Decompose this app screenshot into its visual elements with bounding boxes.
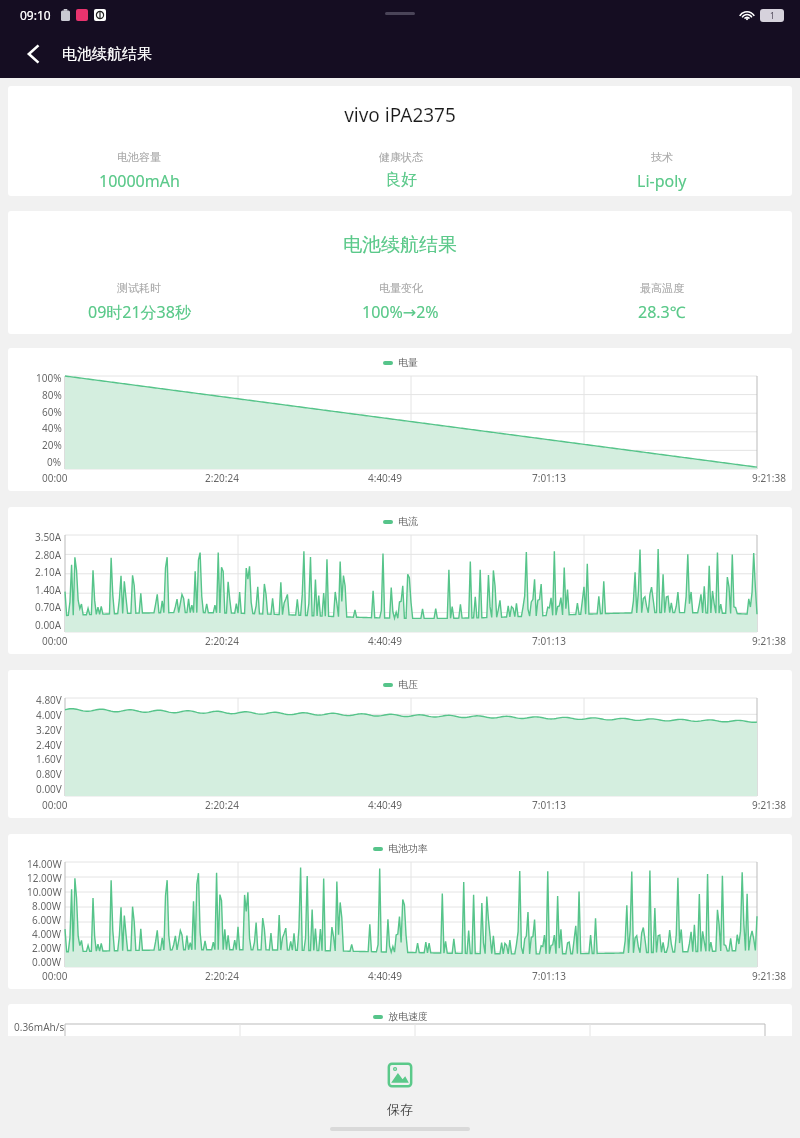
staticText: 电池续航结果 (62, 45, 152, 64)
staticText: 2.00W (32, 941, 62, 955)
staticText: 0% (47, 455, 62, 469)
staticText: 7:01:13 (532, 969, 566, 983)
staticText: 28.3℃ (638, 301, 686, 323)
staticText: 电量变化 (379, 281, 423, 295)
staticText: 3.20V (36, 723, 62, 737)
staticText: 80% (42, 388, 62, 402)
staticText: vivo iPA2375 (8, 102, 792, 128)
staticText: 9:21:38 (752, 798, 786, 812)
staticText: 4:40:49 (368, 471, 402, 485)
staticText: 4.00V (36, 708, 62, 722)
staticText: 7:01:13 (532, 798, 566, 812)
staticText: 12.00W (27, 871, 62, 885)
staticText: 7:01:13 (532, 471, 566, 485)
staticText: 4.00W (32, 927, 62, 941)
staticText: 9:21:38 (752, 471, 786, 485)
staticText: 测试耗时 (117, 281, 161, 295)
staticText: 0.80V (36, 767, 62, 781)
staticText: 电池续航结果 (8, 233, 792, 257)
staticText: 4:40:49 (368, 969, 402, 983)
staticText: 1.60V (36, 752, 62, 766)
staticText: 技术 (651, 150, 673, 164)
staticText: 60% (42, 405, 62, 419)
staticText: 00:00 (42, 634, 68, 648)
staticText: 2:20:24 (205, 798, 239, 812)
staticText: 10000mAh (99, 170, 180, 192)
staticText: 4:40:49 (368, 798, 402, 812)
staticText: 2.40V (36, 738, 62, 752)
staticText: 0.00A (35, 618, 62, 632)
staticText: 4.80V (36, 693, 62, 707)
staticText: 最高温度 (640, 281, 684, 295)
staticText: 3.50A (35, 530, 62, 544)
staticText: 14.00W (27, 857, 62, 871)
staticText: 0.00V (36, 782, 62, 796)
staticText: 电量 (398, 356, 418, 369)
staticText: 保存 (387, 1101, 413, 1117)
staticText: 8.00W (32, 899, 62, 913)
staticText: Li-poly (637, 170, 687, 192)
staticText: 放电速度 (388, 1010, 428, 1023)
staticText: 健康状态 (379, 150, 423, 164)
staticText: 9:21:38 (752, 969, 786, 983)
staticText: 电池容量 (117, 150, 161, 164)
staticText: 9:21:38 (752, 634, 786, 648)
staticText: 40% (42, 421, 62, 435)
staticText: 4:40:49 (368, 634, 402, 648)
staticText: 电池功率 (388, 842, 428, 855)
staticText: 良好 (385, 170, 417, 190)
staticText: 100%→2% (362, 301, 439, 323)
staticText: 00:00 (42, 471, 68, 485)
staticText: 20% (42, 438, 62, 452)
staticText: 10.00W (27, 885, 62, 899)
staticText: 0.70A (35, 600, 62, 614)
staticText: 2:20:24 (205, 471, 239, 485)
staticText: 00:00 (42, 969, 68, 983)
staticText: 2.10A (35, 565, 62, 579)
staticText: 2:20:24 (205, 634, 239, 648)
staticText: 电流 (398, 515, 418, 528)
staticText: 09时21分38秒 (88, 301, 191, 323)
button[interactable]: 保存 (380, 1055, 420, 1117)
staticText: 电压 (398, 678, 418, 691)
staticText: 09:10 (20, 7, 51, 23)
staticText: 2:20:24 (205, 969, 239, 983)
staticText: 00:00 (42, 798, 68, 812)
staticText: 0.00W (32, 955, 62, 967)
staticText: 1.40A (35, 583, 62, 597)
staticText: 6.00W (32, 913, 62, 927)
staticText: 100% (36, 371, 62, 385)
staticText: 1 (770, 10, 775, 21)
button[interactable]: Back (12, 32, 56, 76)
staticText: 7:01:13 (532, 634, 566, 648)
staticText: 0.36mAh/s (14, 1020, 65, 1034)
staticText: 2.80A (35, 548, 62, 562)
